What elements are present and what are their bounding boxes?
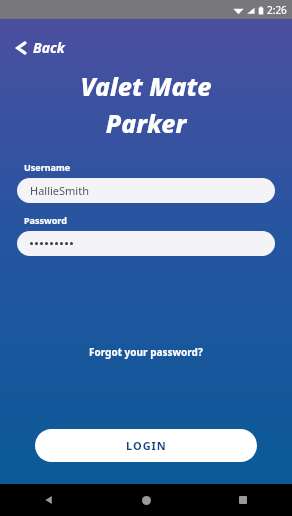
staticText: Back — [33, 38, 65, 57]
button[interactable]: HallieSmith — [17, 178, 275, 203]
staticText: Password — [24, 214, 67, 226]
button[interactable]: Home — [131, 485, 161, 515]
button[interactable] — [17, 231, 275, 256]
button[interactable]: Forgot your password? — [83, 342, 209, 362]
staticText: Parker — [0, 106, 292, 140]
button[interactable]: LOGIN — [35, 429, 257, 462]
staticText: Forgot your password? — [89, 345, 203, 359]
button[interactable]: Back — [13, 36, 68, 59]
button[interactable]: Back — [34, 485, 64, 515]
staticText: Valet Mate — [0, 69, 292, 103]
staticText: 2:26 — [267, 3, 287, 17]
staticText: LOGIN — [126, 438, 167, 453]
staticText: HallieSmith — [30, 183, 89, 198]
button[interactable]: Recent apps — [228, 485, 258, 515]
staticText: Username — [24, 161, 71, 173]
